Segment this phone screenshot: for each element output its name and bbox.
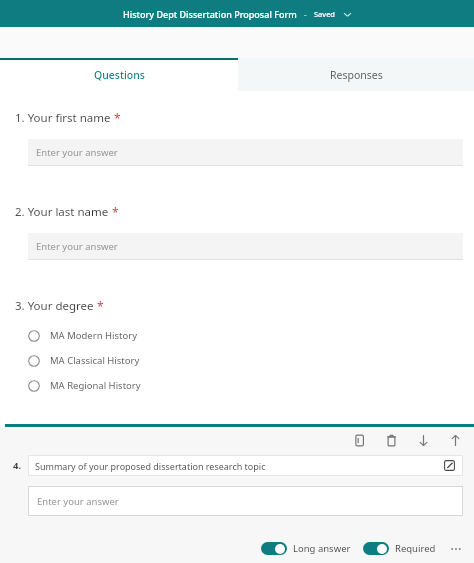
button[interactable]: Enter your answer: [28, 233, 463, 260]
button[interactable]: Enter your answer: [28, 486, 463, 516]
button[interactable]: Long answer: [261, 542, 351, 555]
button[interactable]: Copy question: [348, 429, 370, 451]
button[interactable]: More settings: [448, 541, 464, 557]
staticText: Enter your answer: [36, 240, 118, 253]
staticText: 4.: [13, 459, 22, 472]
staticText: History Dept Dissertation Proposal Form: [123, 8, 297, 20]
staticText: Required: [395, 542, 436, 555]
staticText: Enter your answer: [37, 495, 119, 508]
staticText: 1. Your first name: [15, 110, 114, 126]
button[interactable]: MA Regional History: [28, 373, 474, 398]
button[interactable]: Required: [363, 542, 436, 555]
staticText: Questions: [94, 68, 145, 82]
button[interactable]: Insert media: [443, 459, 456, 472]
button[interactable]: Questions: [0, 58, 238, 91]
staticText: -: [304, 9, 307, 20]
staticText: Long answer: [293, 542, 351, 555]
button[interactable]: Enter your answer: [28, 139, 463, 166]
staticText: Enter your answer: [36, 146, 118, 159]
staticText: 3. Your degree: [15, 298, 97, 314]
staticText: *: [112, 204, 119, 220]
button[interactable]: More options: [342, 9, 352, 19]
button[interactable]: Move question down: [412, 429, 434, 451]
button[interactable]: Summary of your proposed dissertation re…: [28, 455, 463, 476]
button[interactable]: MA Classical History: [28, 348, 474, 373]
staticText: Responses: [330, 68, 383, 82]
staticText: Saved: [314, 9, 335, 19]
button[interactable]: MA Modern History: [28, 323, 474, 348]
staticText: MA Classical History: [50, 354, 140, 367]
staticText: MA Modern History: [50, 329, 137, 342]
button[interactable]: Delete question: [380, 429, 402, 451]
button[interactable]: Responses: [238, 58, 474, 91]
staticText: *: [97, 298, 104, 314]
staticText: Summary of your proposed dissertation re…: [35, 460, 266, 472]
button[interactable]: Move question up: [444, 429, 466, 451]
staticText: *: [114, 110, 121, 126]
staticText: MA Regional History: [50, 379, 141, 392]
staticText: 2. Your last name: [15, 204, 112, 220]
